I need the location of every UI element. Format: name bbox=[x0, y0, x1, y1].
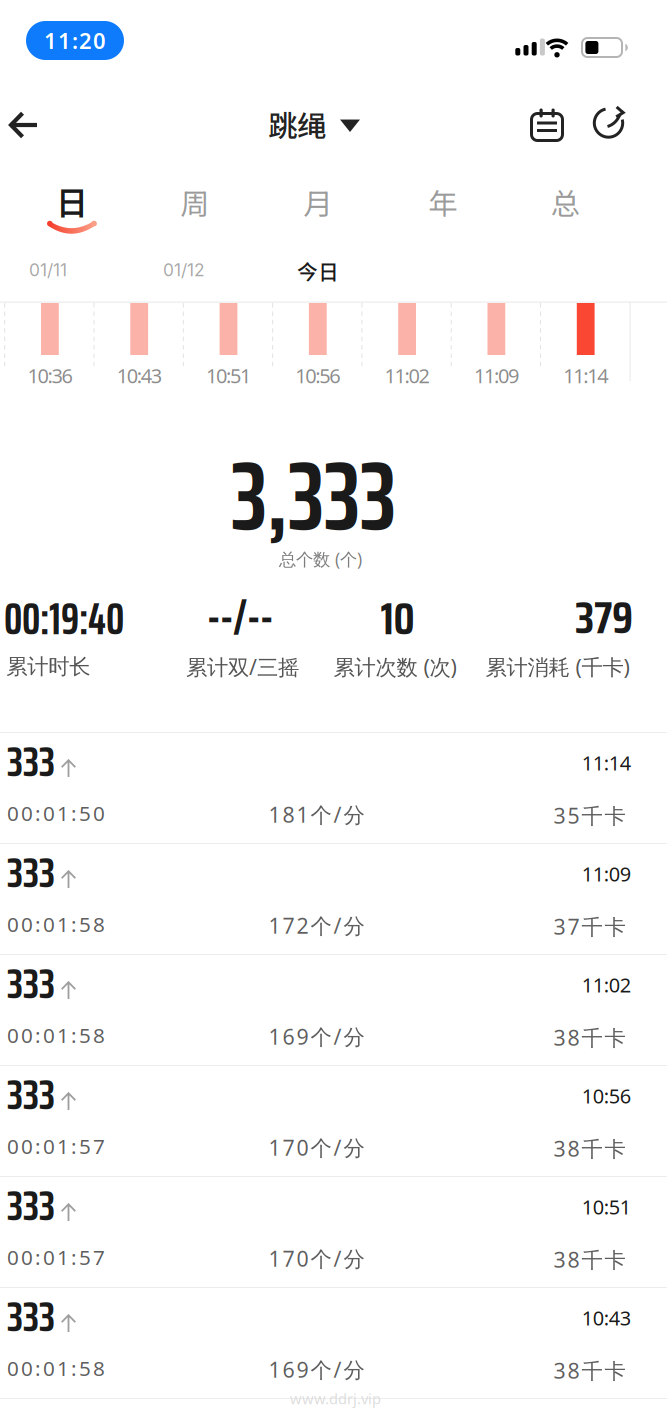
staticText: 333 bbox=[7, 1172, 55, 1239]
staticText: 10:51 bbox=[206, 362, 251, 389]
staticText: 00:01:57 bbox=[7, 1243, 105, 1271]
button[interactable]: Records bbox=[528, 105, 562, 139]
staticText: 10 bbox=[380, 584, 414, 654]
button[interactable]: 333 bbox=[0, 954, 667, 1065]
button[interactable]: Back bbox=[8, 111, 38, 139]
staticText: 10:51 bbox=[582, 1193, 631, 1220]
button[interactable]: 333 bbox=[0, 1065, 667, 1176]
staticText: 11:02 bbox=[385, 362, 430, 389]
staticText: 11:14 bbox=[582, 749, 631, 776]
staticText: 35千卡 bbox=[553, 801, 625, 830]
staticText: 00:01:58 bbox=[7, 1021, 105, 1049]
staticText: 00:01:57 bbox=[7, 1132, 105, 1160]
staticText: 11:20 bbox=[44, 25, 106, 55]
button[interactable]: 总 bbox=[550, 181, 579, 223]
staticText: --/-- bbox=[207, 582, 273, 652]
staticText: 379 bbox=[575, 583, 633, 653]
staticText: 00:01:58 bbox=[7, 910, 105, 938]
staticText: 37千卡 bbox=[553, 912, 625, 941]
staticText: 38千卡 bbox=[553, 1023, 625, 1052]
button[interactable]: 333 bbox=[0, 732, 667, 843]
staticText: 10:56 bbox=[582, 1082, 631, 1109]
staticText: 月 bbox=[303, 181, 332, 223]
staticText: 38千卡 bbox=[553, 1134, 625, 1163]
staticText: 日 bbox=[56, 177, 88, 224]
staticText: 00:01:58 bbox=[7, 1354, 105, 1382]
button[interactable]: 年 bbox=[428, 181, 457, 223]
button[interactable]: 周 bbox=[180, 181, 209, 223]
button[interactable]: 日 bbox=[56, 177, 88, 224]
staticText: 00:19:40 bbox=[4, 585, 124, 653]
button[interactable]: 月 bbox=[303, 181, 332, 223]
staticText: 170个/分 bbox=[268, 1244, 364, 1273]
staticText: 11:02 bbox=[582, 971, 631, 998]
button[interactable]: Share bbox=[593, 106, 627, 140]
staticText: 10:36 bbox=[27, 362, 72, 389]
staticText: 累计消耗 (千卡) bbox=[485, 652, 629, 681]
staticText: 11:09 bbox=[474, 362, 519, 389]
staticText: 169个/分 bbox=[268, 1355, 364, 1384]
staticText: 年 bbox=[428, 181, 457, 223]
button[interactable]: 跳绳 bbox=[268, 103, 360, 145]
staticText: 累计双/三摇 bbox=[186, 652, 299, 681]
staticText: 01/11 bbox=[29, 259, 67, 280]
staticText: 11:14 bbox=[563, 362, 608, 389]
staticText: 累计时长 bbox=[6, 653, 90, 680]
staticText: 10:43 bbox=[582, 1304, 631, 1331]
staticText: 3,333 bbox=[231, 421, 396, 571]
staticText: 333 bbox=[7, 1283, 55, 1350]
staticText: 333 bbox=[7, 728, 55, 795]
staticText: www.ddrj.vip bbox=[290, 1388, 381, 1408]
staticText: 10:56 bbox=[295, 362, 340, 389]
button[interactable]: 333 bbox=[0, 1176, 667, 1287]
button[interactable]: 333 bbox=[0, 843, 667, 954]
staticText: 累计次数 (次) bbox=[333, 652, 456, 681]
staticText: 38千卡 bbox=[553, 1245, 625, 1274]
staticText: 11:09 bbox=[582, 860, 631, 887]
staticText: 总 bbox=[550, 181, 579, 223]
staticText: 周 bbox=[180, 181, 209, 223]
staticText: 01/12 bbox=[163, 259, 205, 280]
button[interactable]: 333 bbox=[0, 1287, 667, 1398]
staticText: 172个/分 bbox=[268, 911, 364, 940]
staticText: 跳绳 bbox=[268, 103, 326, 145]
staticText: 181个/分 bbox=[268, 800, 364, 829]
staticText: 今日 bbox=[297, 255, 339, 285]
staticText: 333 bbox=[7, 839, 55, 906]
staticText: 总个数 (个) bbox=[279, 547, 362, 571]
staticText: 00:01:50 bbox=[7, 799, 105, 827]
staticText: 38千卡 bbox=[553, 1356, 625, 1385]
staticText: 333 bbox=[7, 950, 55, 1017]
button[interactable]: Return to call bbox=[26, 21, 124, 60]
staticText: 333 bbox=[7, 1061, 55, 1128]
staticText: 10:43 bbox=[117, 362, 162, 389]
staticText: 169个/分 bbox=[268, 1022, 364, 1051]
staticText: 170个/分 bbox=[268, 1133, 364, 1162]
